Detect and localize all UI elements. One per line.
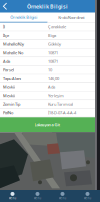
button[interactable]: Tab 3: [50, 190, 75, 202]
staticText: 10871: [48, 50, 58, 55]
staticText: 10: [48, 67, 52, 72]
staticText: İ18-D-07-A-4-A-4: [48, 110, 76, 115]
staticText: İl: [3, 24, 5, 29]
button[interactable]: Tab 2: [25, 190, 50, 202]
staticText: Parsel: [3, 67, 14, 72]
staticText: [84, 0, 90, 21]
button[interactable]: Tab 1: [0, 190, 25, 202]
button[interactable]: Kroki/Koordinat: [47, 13, 95, 23]
staticText: 10871: [48, 58, 58, 64]
staticText: 146,00: [48, 76, 59, 81]
button[interactable]: Back: [0, 0, 16, 13]
button[interactable]: Tab 4: [75, 190, 100, 202]
staticText: Lokasyona Git: [34, 122, 60, 127]
staticText: Kroki/Koordinat: [58, 15, 84, 20]
staticText: Menü: [8, 196, 16, 200]
staticText: Ada: [48, 84, 55, 90]
staticText: Mahalle/Köy: [3, 41, 24, 47]
staticText: Biga: [48, 33, 56, 38]
staticText: Tapu Alanı: [3, 76, 21, 81]
staticText: Ada: [3, 58, 10, 64]
staticText: Gökköy: [48, 41, 61, 47]
staticText: Mevkii: [3, 84, 15, 90]
staticText: İlçe: [3, 33, 9, 38]
staticText: Yerleşim: [48, 93, 64, 98]
staticText: Mahalle No: [3, 50, 23, 55]
staticText: Örneklik Bilgisi: [10, 15, 37, 20]
button[interactable]: Lokasyona Git: [0, 117, 95, 132]
button[interactable]: Örneklik Bilgisi: [0, 13, 47, 23]
staticText: Zemin Tip: [3, 101, 20, 107]
staticText: Menü: [33, 196, 41, 200]
staticText: Menü: [58, 196, 66, 200]
staticText: Kuru Tarımsal: [48, 101, 73, 107]
staticText: PafNo: [3, 110, 13, 115]
button[interactable]: Options: [79, 0, 95, 13]
staticText: Çanakkale: [48, 24, 66, 29]
staticText: Örneklik Bilgisi: [27, 3, 68, 10]
staticText: Mevkii: [3, 93, 15, 98]
staticText: Menü: [83, 196, 91, 200]
